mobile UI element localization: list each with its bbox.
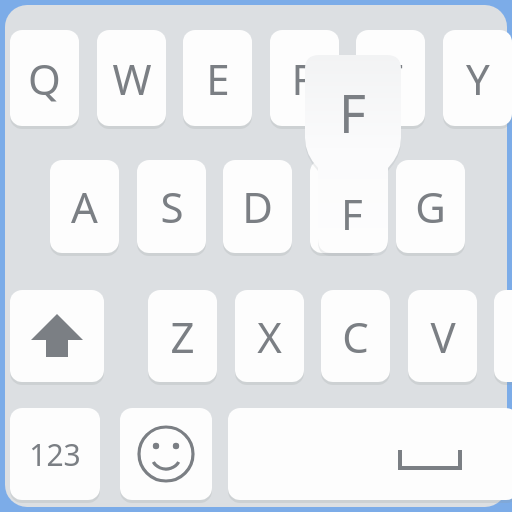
staticText: Q	[28, 50, 61, 107]
button[interactable]: X	[235, 290, 304, 382]
button[interactable]: S	[137, 160, 206, 253]
staticText: C	[342, 308, 369, 365]
staticText: E	[206, 50, 230, 107]
button[interactable]: E	[183, 30, 252, 126]
button[interactable]: Shift	[10, 290, 104, 382]
button[interactable]: A	[50, 160, 119, 253]
button[interactable]: D	[223, 160, 292, 253]
button[interactable]: W	[97, 30, 166, 126]
staticText: S	[160, 178, 184, 235]
button[interactable]: Q	[10, 30, 79, 126]
staticText: V	[430, 308, 456, 365]
staticText: G	[415, 178, 446, 235]
button[interactable]: F	[305, 55, 401, 253]
staticText: Z	[170, 308, 195, 365]
staticText: T	[379, 50, 403, 107]
staticText: F	[339, 77, 366, 148]
staticText: R	[291, 50, 318, 107]
staticText: A	[71, 178, 98, 235]
button[interactable]: 123	[10, 408, 100, 500]
button[interactable]: Emoji	[120, 408, 212, 500]
staticText: X	[257, 308, 282, 365]
staticText: W	[112, 50, 152, 107]
button[interactable]: C	[321, 290, 390, 382]
staticText: F	[334, 178, 356, 235]
button[interactable]: Space	[228, 408, 512, 500]
button[interactable]: V	[408, 290, 477, 382]
staticText: 123	[29, 434, 81, 475]
button[interactable]: T	[356, 30, 425, 126]
button[interactable]: R	[270, 30, 339, 126]
button[interactable]: G	[396, 160, 465, 253]
staticText: D	[242, 178, 273, 235]
button[interactable]: F	[310, 160, 379, 253]
button[interactable]: Z	[148, 290, 217, 382]
button[interactable]	[494, 290, 512, 382]
button[interactable]: Y	[443, 30, 512, 126]
staticText: Y	[466, 50, 490, 107]
staticText: F	[341, 185, 363, 242]
